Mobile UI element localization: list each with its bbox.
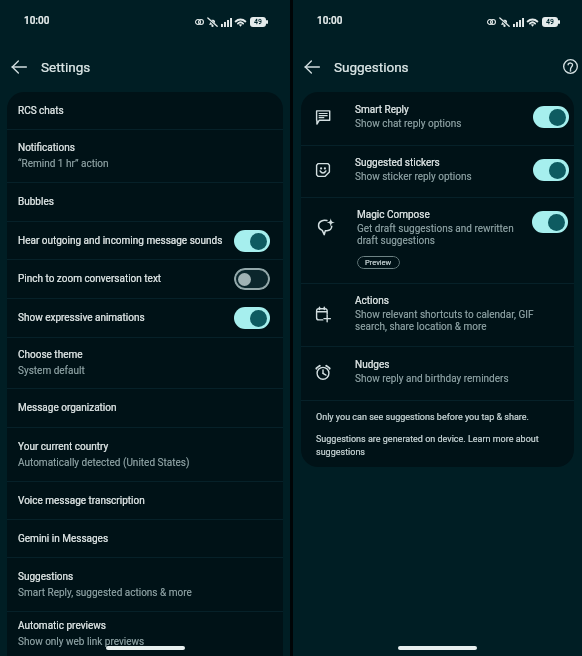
staticText: Show chat reply options	[355, 118, 462, 130]
button[interactable]: Back	[298, 53, 325, 80]
button[interactable]: Notifications	[7, 130, 283, 182]
button[interactable]: Actions	[301, 284, 574, 346]
staticText: Settings	[41, 59, 91, 75]
button[interactable]: Message organization	[7, 389, 283, 427]
staticText: Show expressive animations	[18, 312, 145, 324]
staticText: 49	[546, 18, 554, 26]
staticText: Gemini in Messages	[18, 533, 109, 545]
staticText: System default	[18, 365, 85, 377]
staticText: Suggestions are generated on device. Lea…	[316, 434, 539, 457]
staticText: Suggestions	[18, 571, 74, 583]
button[interactable]: Nudges	[301, 347, 574, 400]
staticText: “Remind 1 hr” action	[18, 158, 109, 170]
staticText: Show relevant shortcuts to calendar, GIF…	[355, 309, 534, 333]
button[interactable]: Show expressive animations	[7, 299, 283, 337]
staticText: Smart Reply	[355, 104, 409, 116]
button[interactable]: RCS chats	[7, 92, 283, 129]
staticText: Voice message transcription	[18, 495, 145, 507]
staticText: Automatically detected (United States)	[18, 457, 190, 469]
staticText: Suggested stickers	[355, 157, 440, 169]
button[interactable]: Voice message transcription	[7, 482, 283, 519]
staticText: RCS chats	[18, 105, 64, 117]
button[interactable]: Hear outgoing and incoming message sound…	[7, 222, 283, 259]
staticText: Smart Reply, suggested actions & more	[18, 587, 192, 599]
staticText: Preview	[365, 258, 392, 267]
staticText: 10:00	[24, 15, 50, 27]
button[interactable]: Suggested stickers	[301, 146, 574, 197]
staticText: Show reply and birthday reminders	[355, 373, 509, 385]
button[interactable]: Choose theme	[7, 338, 283, 388]
button[interactable]: Magic Compose	[301, 198, 574, 283]
button[interactable]: Gemini in Messages	[7, 520, 283, 557]
button[interactable]: Pinch to zoom conversation text	[7, 260, 283, 298]
button[interactable]: Your current country	[7, 428, 283, 481]
staticText: Message organization	[18, 402, 117, 414]
button[interactable]: Back	[5, 53, 32, 80]
staticText: Bubbles	[18, 196, 54, 208]
staticText: Nudges	[355, 359, 390, 371]
button[interactable]: Help	[557, 53, 582, 80]
button[interactable]: Suggestions	[7, 558, 283, 611]
staticText: Choose theme	[18, 349, 83, 361]
staticText: Your current country	[18, 441, 109, 453]
staticText: Pinch to zoom conversation text	[18, 273, 162, 285]
staticText: Only you can see suggestions before you …	[316, 412, 529, 423]
staticText: Magic Compose	[357, 209, 430, 221]
button[interactable]: Smart Reply	[301, 92, 574, 145]
staticText: Hear outgoing and incoming message sound…	[18, 235, 223, 247]
staticText: Show only web link previews	[18, 636, 145, 648]
staticText: Get draft suggestions and rewritten draf…	[357, 223, 514, 247]
button[interactable]: Automatic previews	[7, 612, 283, 656]
button[interactable]: Bubbles	[7, 183, 283, 221]
staticText: Suggestions	[334, 59, 409, 75]
staticText: 10:00	[317, 15, 343, 27]
staticText: 49	[254, 18, 262, 26]
staticText: Show sticker reply options	[355, 171, 472, 183]
staticText: Actions	[355, 295, 389, 307]
staticText: Automatic previews	[18, 620, 106, 632]
staticText: Notifications	[18, 142, 75, 154]
